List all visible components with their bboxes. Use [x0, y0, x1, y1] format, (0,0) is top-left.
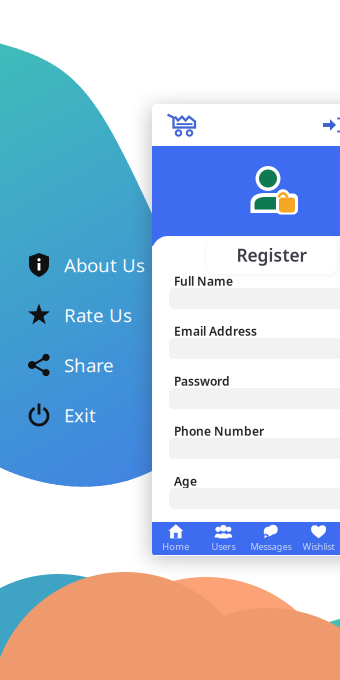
button[interactable]: Rate Us	[27, 297, 139, 333]
staticText: Exit	[64, 403, 96, 427]
staticText: Email Address	[174, 323, 257, 339]
staticText: Rate Us	[64, 303, 132, 327]
button[interactable]: Register	[207, 236, 337, 274]
button[interactable]: Login	[323, 104, 340, 146]
staticText: Register	[236, 243, 307, 266]
button[interactable]: Users	[200, 522, 247, 555]
button[interactable]: Wishlist	[295, 522, 340, 555]
button[interactable]: Exit	[27, 397, 139, 433]
button[interactable]: Messages	[247, 522, 295, 555]
staticText: Wishlist	[303, 540, 335, 553]
staticText: Full Name	[174, 273, 233, 289]
staticText: Phone Number	[174, 423, 264, 439]
button[interactable]: Cart	[158, 104, 206, 146]
staticText: Messages	[250, 540, 291, 553]
staticText: Age	[174, 473, 197, 489]
button[interactable]: Share	[27, 347, 139, 383]
staticText: Share	[64, 353, 114, 377]
button[interactable]: About Us	[27, 247, 139, 283]
staticText: Users	[211, 540, 235, 553]
staticText: Password	[174, 373, 230, 389]
staticText: About Us	[64, 253, 145, 277]
staticText: Home	[162, 540, 189, 553]
button[interactable]: Home	[152, 522, 200, 555]
